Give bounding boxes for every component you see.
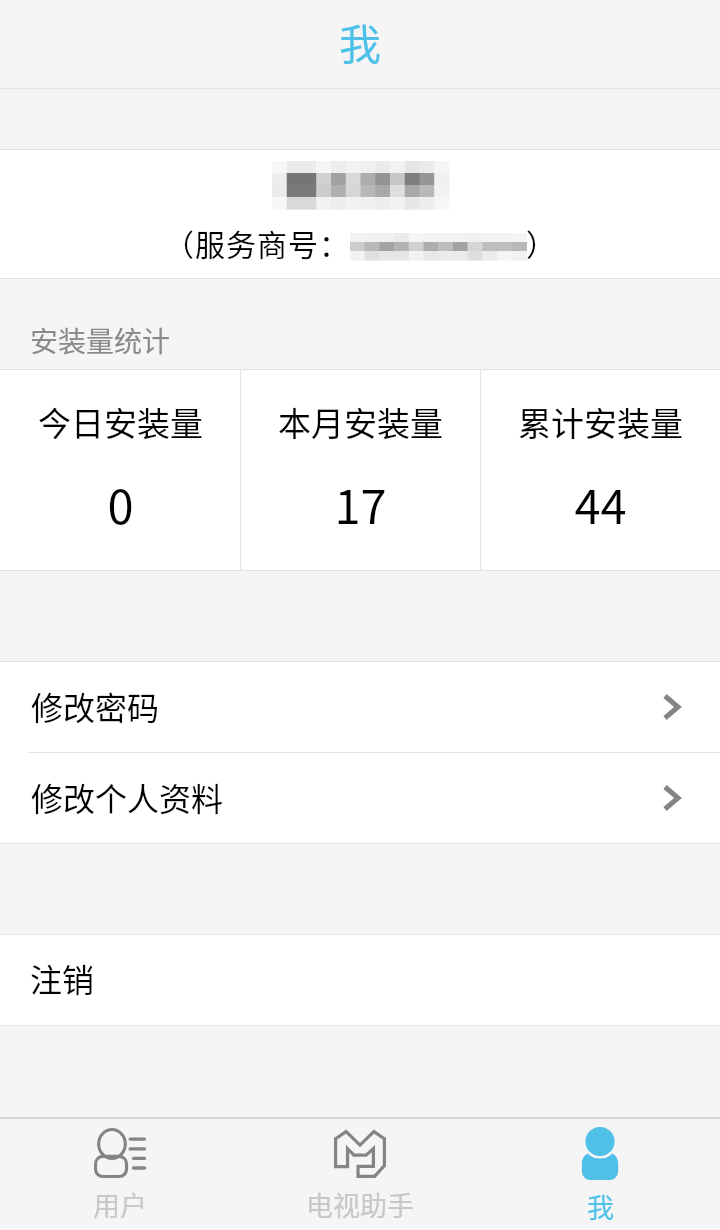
staticText: 17 [334,469,387,537]
staticText: 注销 [30,955,95,1001]
staticText: 累计安装量 [518,398,683,446]
staticText: 本月安装量 [278,398,443,446]
staticText: 我 [339,11,382,72]
button[interactable]: 我 [480,1119,720,1230]
button[interactable]: 修改密码 [0,662,720,752]
staticText: （服务商号： [164,221,350,264]
button[interactable]: 本月安装量 [241,370,480,570]
other: 用户 [94,1128,146,1178]
button[interactable]: 用户 [0,1119,240,1230]
staticText: 修改个人资料 [31,774,224,820]
staticText: 修改密码 [31,683,160,729]
other: 打开 [665,696,678,718]
button[interactable]: 电视助手 [240,1119,480,1230]
button[interactable]: 注销 [0,935,720,1025]
button[interactable]: 今日安装量 [0,370,240,570]
other: 我 [581,1128,619,1180]
staticText: 今日安装量 [38,398,203,446]
staticText: 电视助手 [306,1185,414,1224]
button[interactable]: 修改个人资料 [0,753,720,843]
staticText: 44 [574,469,627,537]
staticText: 安装量统计 [30,320,171,361]
staticText: 用户 [93,1185,147,1224]
other: 打开 [665,787,678,809]
staticText: 我 [587,1187,614,1226]
other: 电视助手 [334,1128,386,1178]
button[interactable]: 累计安装量 [481,370,720,570]
staticText: 0 [107,469,134,537]
staticText: ） [526,221,556,264]
